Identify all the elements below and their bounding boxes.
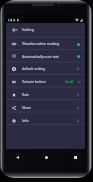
button[interactable]: Open [74,104,82,112]
button[interactable]: Rate [6,87,85,100]
button[interactable]: Automatically scan text [6,49,85,61]
staticText: Info [22,118,29,123]
staticText: Automatically scan text [22,54,59,59]
button[interactable]: Home [41,152,51,162]
button[interactable]: Back [12,152,22,162]
staticText: default setting [22,66,46,71]
button[interactable]: Toggle [74,40,82,48]
staticText: Scroll [65,80,74,84]
button[interactable]: Recents [70,152,80,162]
button[interactable]: Open [74,91,82,99]
button[interactable]: Open [74,117,82,125]
button[interactable]: Back [10,25,19,34]
button[interactable]: Vibration when reading [6,36,85,49]
button[interactable]: Info [6,113,85,126]
staticText: Share [22,105,32,110]
button[interactable]: default setting [6,61,85,74]
staticText: Volume button [22,79,46,84]
staticText: Rate [22,92,30,97]
button[interactable]: Open [74,65,82,73]
button[interactable]: Volume button [6,74,85,87]
button[interactable]: Share [6,100,85,113]
staticText: Setting [22,27,34,32]
button[interactable]: Toggle [74,52,82,60]
button[interactable]: Scroll [65,79,82,85]
staticText: Vibration when reading [22,41,60,46]
